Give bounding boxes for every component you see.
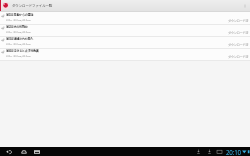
staticText: ダウンロード済 <box>228 42 249 47</box>
staticText: 第4回 泣きると止す死角裏 <box>6 48 39 53</box>
staticText: ダウンロードファイル一覧 <box>12 3 53 8</box>
staticText: 第1回 見者からの電話 <box>6 12 34 17</box>
staticText: ダウンロード済 <box>228 18 249 23</box>
staticText: ダウンロード済 <box>228 30 249 35</box>
button[interactable]: Home <box>20 148 28 156</box>
button[interactable]: 第3回 逮捕された殺人 <box>0 37 250 49</box>
button[interactable]: Back <box>5 148 13 156</box>
staticText: 20:10 <box>226 148 241 156</box>
staticText: 第2回 水の死刑台 <box>6 24 28 29</box>
staticText: 第3回 逮捕された殺人 <box>6 36 34 41</box>
button[interactable]: More options <box>240 0 250 11</box>
button[interactable]: 第4回 泣きると止す死角裏 <box>0 49 250 61</box>
staticText: 100% 30.0MB/30.0MB <box>6 30 31 33</box>
staticText: 100% 30.0MB/30.0MB <box>6 42 31 45</box>
staticText: 100% 30.0MB/30.0MB <box>6 18 31 21</box>
button[interactable]: 第2回 水の死刑台 <box>0 25 250 37</box>
staticText: ダウンロード済 <box>228 54 249 59</box>
staticText: 100% 30.0MB/30.0MB <box>6 54 31 57</box>
button[interactable]: Recents <box>33 148 41 156</box>
button[interactable]: 第1回 見者からの電話 <box>0 13 250 25</box>
